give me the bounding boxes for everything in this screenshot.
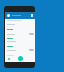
- button[interactable]: Add: [18, 56, 23, 61]
- button[interactable]: Action: [29, 33, 34, 35]
- button[interactable]: Action 2: [29, 49, 34, 51]
- button[interactable]: Profile: [7, 14, 10, 17]
